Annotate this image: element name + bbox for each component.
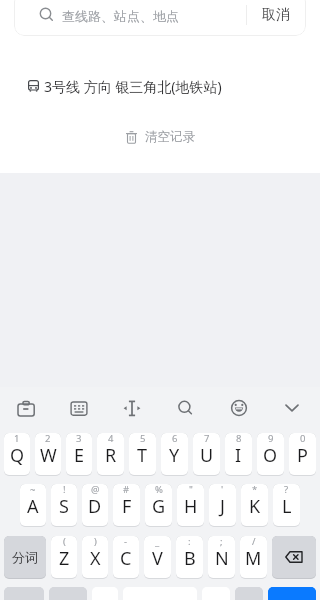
button[interactable]: ) — [82, 536, 108, 579]
staticText: O — [263, 443, 278, 468]
staticText: J — [220, 494, 225, 519]
staticText: M — [245, 546, 262, 571]
button[interactable]: " — [177, 484, 204, 527]
staticText: D — [88, 494, 102, 519]
button[interactable] — [268, 587, 316, 600]
button[interactable]: @ — [82, 484, 108, 527]
staticText: X — [90, 546, 101, 571]
button[interactable]: 清空记录 — [126, 129, 195, 145]
button[interactable] — [235, 587, 263, 600]
staticText: 5 — [140, 433, 146, 445]
staticText: F — [122, 494, 132, 519]
staticText: * — [252, 484, 258, 496]
staticText: - — [124, 536, 128, 548]
staticText: 3号线 方向 银三角北(地铁站) — [44, 77, 222, 96]
button[interactable] — [66, 395, 92, 421]
button[interactable]: ? — [273, 484, 300, 527]
staticText: / — [252, 536, 256, 548]
staticText: V — [152, 546, 163, 571]
staticText: L — [282, 494, 292, 519]
staticText: I — [235, 443, 242, 468]
staticText: ' — [221, 484, 224, 496]
button[interactable] — [172, 395, 198, 421]
button[interactable]: 3号线 方向 银三角北(地铁站) — [0, 70, 320, 102]
staticText: W — [40, 443, 57, 468]
button[interactable] — [272, 536, 316, 579]
button[interactable]: : — [176, 536, 203, 579]
button[interactable]: / — [240, 536, 267, 579]
button[interactable]: 8 — [225, 433, 252, 476]
button[interactable]: 5 — [129, 433, 156, 476]
staticText: : — [188, 536, 191, 548]
staticText: R — [105, 443, 117, 468]
staticText: S — [59, 494, 69, 519]
staticText: P — [297, 443, 308, 468]
button[interactable] — [14, 0, 306, 36]
button[interactable]: 7 — [193, 433, 220, 476]
staticText: T — [137, 443, 148, 468]
button[interactable]: - — [113, 536, 139, 579]
button[interactable]: % — [145, 484, 172, 527]
button[interactable] — [279, 395, 305, 421]
button[interactable]: 2 — [35, 433, 61, 476]
button[interactable]: ! — [51, 484, 77, 527]
button[interactable]: ; — [208, 536, 235, 579]
button[interactable]: ' — [209, 484, 236, 527]
staticText: ! — [63, 484, 66, 496]
staticText: 2 — [45, 433, 51, 445]
staticText: 3 — [76, 433, 82, 445]
button[interactable]: 分词 — [4, 536, 46, 579]
staticText: # — [123, 484, 130, 496]
staticText: U — [200, 443, 214, 468]
button[interactable]: ( — [51, 536, 77, 579]
staticText: 分词 — [12, 549, 38, 565]
staticText: ; — [220, 536, 223, 548]
staticText: 9 — [268, 433, 274, 445]
button[interactable] — [13, 395, 39, 421]
button[interactable]: _ — [144, 536, 171, 579]
staticText: @ — [91, 484, 100, 496]
staticText: A — [27, 494, 39, 519]
button[interactable]: ~ — [20, 484, 46, 527]
button[interactable]: 0 — [289, 433, 316, 476]
staticText: Y — [169, 443, 180, 468]
staticText: ) — [94, 536, 97, 548]
staticText: % — [155, 484, 163, 496]
staticText: G — [152, 494, 166, 519]
button[interactable]: 9 — [257, 433, 284, 476]
button[interactable] — [49, 587, 87, 600]
staticText: 8 — [236, 433, 242, 445]
button[interactable]: * — [241, 484, 268, 527]
button[interactable]: 取消 — [262, 6, 290, 24]
staticText: _ — [155, 536, 160, 548]
button[interactable] — [4, 587, 44, 600]
staticText: Q — [10, 443, 25, 468]
button[interactable]: # — [113, 484, 140, 527]
staticText: 7 — [204, 433, 210, 445]
staticText: ~ — [30, 484, 36, 496]
staticText: 4 — [108, 433, 114, 445]
staticText: 6 — [172, 433, 178, 445]
staticText: N — [215, 546, 229, 571]
staticText: 0 — [300, 433, 306, 445]
staticText: K — [249, 494, 261, 519]
staticText: 1 — [14, 433, 20, 445]
staticText: ? — [284, 484, 289, 496]
button[interactable]: 3 — [66, 433, 92, 476]
staticText: C — [120, 546, 132, 571]
button[interactable]: 1 — [4, 433, 30, 476]
staticText: ( — [63, 536, 66, 548]
button[interactable]: 4 — [97, 433, 124, 476]
staticText: 查线路、站点、地点 — [62, 8, 179, 24]
staticText: B — [184, 546, 196, 571]
button[interactable] — [119, 395, 145, 421]
button[interactable] — [226, 395, 252, 421]
staticText: 清空记录 — [145, 129, 195, 145]
staticText: " — [189, 484, 193, 496]
staticText: H — [184, 494, 198, 519]
button[interactable]: 6 — [161, 433, 188, 476]
staticText: E — [74, 443, 85, 468]
